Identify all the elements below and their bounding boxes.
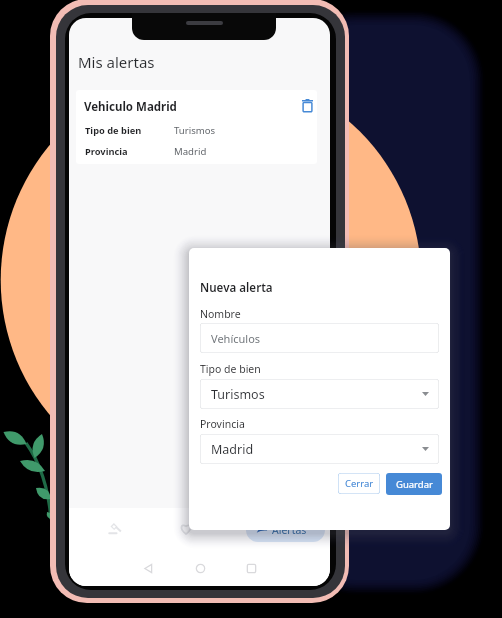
- staticText: Tipo de bien: [85, 124, 142, 137]
- staticText: Madrid: [211, 441, 254, 458]
- staticText: Tipo de bien: [200, 362, 261, 376]
- staticText: Turismos: [174, 124, 216, 137]
- staticText: Vehiculo Madrid: [84, 99, 177, 115]
- button[interactable]: Favoritos: [178, 521, 194, 537]
- button[interactable]: Guardar: [386, 473, 442, 495]
- button[interactable]: Alertas: [246, 518, 325, 542]
- staticText: Mis alertas: [78, 52, 155, 72]
- staticText: Provincia: [85, 145, 128, 158]
- staticText: Vehículos: [211, 331, 261, 346]
- staticText: Turismos: [211, 386, 265, 403]
- button[interactable]: Vehículos: [200, 323, 439, 353]
- staticText: Guardar: [396, 478, 433, 491]
- staticText: Provincia: [200, 417, 245, 431]
- button[interactable]: Subastas: [107, 521, 123, 537]
- button[interactable]: Cerrar: [338, 473, 380, 494]
- staticText: Cerrar: [345, 477, 374, 490]
- button[interactable]: Madrid: [200, 434, 439, 464]
- staticText: Nueva alerta: [200, 280, 273, 296]
- button[interactable]: Eliminar alerta: [302, 99, 313, 112]
- staticText: Alertas: [272, 523, 307, 537]
- staticText: Nombre: [200, 307, 241, 321]
- button[interactable]: Inicio: [189, 557, 211, 579]
- button[interactable]: Turismos: [200, 379, 439, 409]
- staticText: Madrid: [174, 145, 207, 158]
- button[interactable]: Recientes: [240, 557, 262, 579]
- button[interactable]: Atrás: [137, 557, 159, 579]
